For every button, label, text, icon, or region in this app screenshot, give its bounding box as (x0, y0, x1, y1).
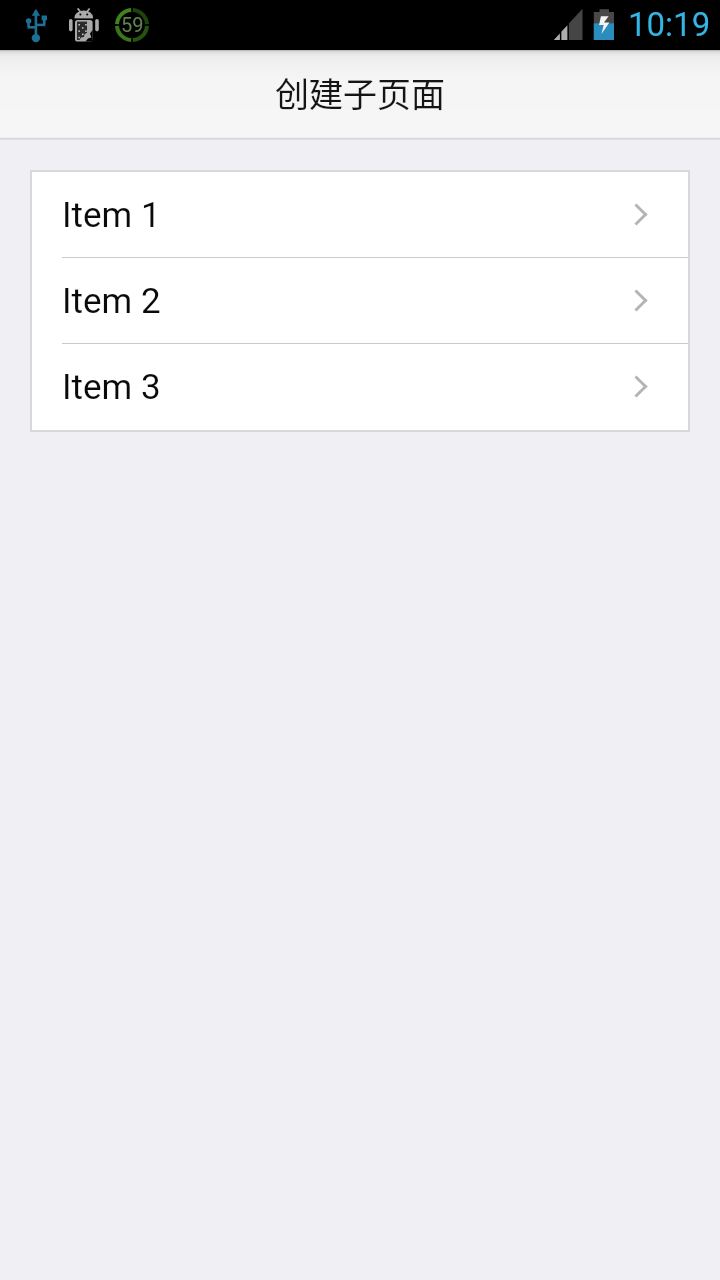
staticText: Item 1 (62, 195, 161, 236)
button[interactable]: Item 2 (32, 258, 688, 344)
other: USB connected, USB debugging, battery 59… (0, 0, 720, 50)
staticText: 10:19 (628, 5, 711, 44)
staticText: 59 (121, 13, 144, 36)
staticText: 创建子页面 (275, 68, 445, 117)
button[interactable]: Item 1 (32, 172, 688, 258)
staticText: Item 3 (62, 367, 161, 408)
button[interactable]: Item 3 (32, 344, 688, 430)
staticText: Item 2 (62, 281, 161, 322)
